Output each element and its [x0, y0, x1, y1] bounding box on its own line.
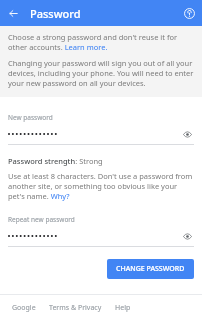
staticText: Help: [115, 303, 131, 313]
button[interactable]: Help: [113, 300, 133, 316]
staticText: Changing your password will sign you out…: [8, 58, 194, 88]
staticText: Password strength: Strong: [8, 156, 103, 166]
button[interactable]: Terms & Privacy: [47, 300, 104, 316]
button[interactable]: Back: [0, 0, 26, 26]
button[interactable]: Show repeated password: [8, 229, 194, 243]
staticText: Repeat new password: [8, 215, 75, 224]
staticText: Google: [12, 303, 36, 313]
staticText: Use at least 8 characters. Don't use a p…: [8, 171, 194, 201]
staticText: Password: [30, 6, 81, 21]
button[interactable]: Google: [10, 300, 38, 316]
button[interactable]: Show repeated password: [180, 229, 194, 243]
staticText: Choose a strong password and don't reuse…: [8, 32, 194, 52]
button[interactable]: Help: [176, 0, 202, 26]
staticText: Terms & Privacy: [49, 303, 102, 313]
staticText: CHANGE PASSWORD: [116, 264, 185, 274]
button[interactable]: Show password: [180, 127, 194, 141]
staticText: New password: [8, 113, 53, 122]
button[interactable]: Show password: [8, 127, 194, 141]
button[interactable]: CHANGE PASSWORD: [107, 259, 194, 279]
